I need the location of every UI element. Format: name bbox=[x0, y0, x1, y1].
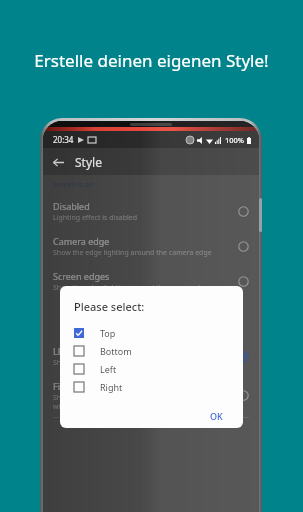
staticText: Fingerprint sensor bbox=[53, 380, 132, 392]
staticText: Erstelle deinen eigenen Style! bbox=[34, 49, 269, 72]
staticText: Screen edges bbox=[53, 270, 110, 282]
staticText: Show a "LED" dot in the statusbar bbox=[53, 358, 164, 368]
staticText: 20:34 bbox=[53, 134, 74, 145]
staticText: Disabled bbox=[53, 200, 90, 212]
button[interactable]: Left bbox=[74, 360, 231, 378]
staticText: OK bbox=[210, 410, 223, 422]
staticText: Please select: bbox=[74, 299, 145, 314]
button[interactable]: Top bbox=[74, 324, 231, 342]
staticText: Lighting effect is disabled bbox=[53, 213, 138, 223]
button[interactable]: Bottom bbox=[74, 342, 231, 360]
staticText: Left bbox=[100, 363, 117, 375]
button[interactable]: LED dot bbox=[43, 339, 259, 374]
button[interactable]: Right bbox=[74, 378, 231, 396]
button[interactable]: Screen edges bbox=[43, 264, 259, 299]
staticText: Bottom bbox=[100, 345, 132, 357]
staticText: Show the edge lighting around the screen… bbox=[53, 283, 213, 293]
button[interactable]: OK bbox=[202, 406, 231, 426]
button[interactable]: Back bbox=[48, 152, 68, 172]
staticText: Camera edge bbox=[53, 235, 110, 247]
staticText: Right bbox=[100, 381, 123, 393]
button[interactable]: Camera edge bbox=[43, 229, 259, 264]
button[interactable]: Disabled bbox=[43, 194, 259, 229]
staticText: LED dot bbox=[53, 345, 86, 357]
staticText: Screen is on bbox=[53, 180, 94, 190]
staticText: Top bbox=[100, 327, 116, 339]
button[interactable]: Fingerprint sensor bbox=[43, 374, 259, 417]
staticText: Style bbox=[75, 154, 102, 170]
staticText: Show a lighting effect around the finger… bbox=[53, 393, 224, 411]
staticText: 100% bbox=[225, 135, 245, 145]
staticText: Show the edge lighting around the camera… bbox=[53, 248, 212, 258]
